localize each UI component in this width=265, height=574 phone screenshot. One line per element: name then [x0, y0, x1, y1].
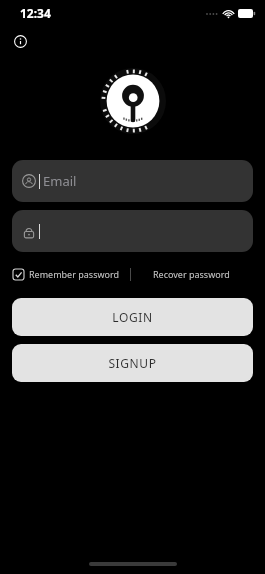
button[interactable]: Information — [8, 29, 32, 53]
staticText: LOGIN — [112, 309, 153, 325]
button[interactable]: Remember password — [13, 268, 120, 280]
button[interactable]: Recover password — [153, 268, 230, 280]
button[interactable]: Email field — [12, 160, 253, 202]
button[interactable]: Password field — [12, 210, 253, 252]
staticText: Remember password — [29, 268, 120, 280]
staticText: 12:34 — [20, 5, 51, 21]
button[interactable]: LOGIN — [12, 298, 253, 336]
staticText: Recover password — [153, 268, 230, 280]
staticText: SIGNUP — [108, 355, 157, 371]
staticText: Email — [43, 172, 77, 190]
button[interactable]: SIGNUP — [12, 344, 253, 382]
